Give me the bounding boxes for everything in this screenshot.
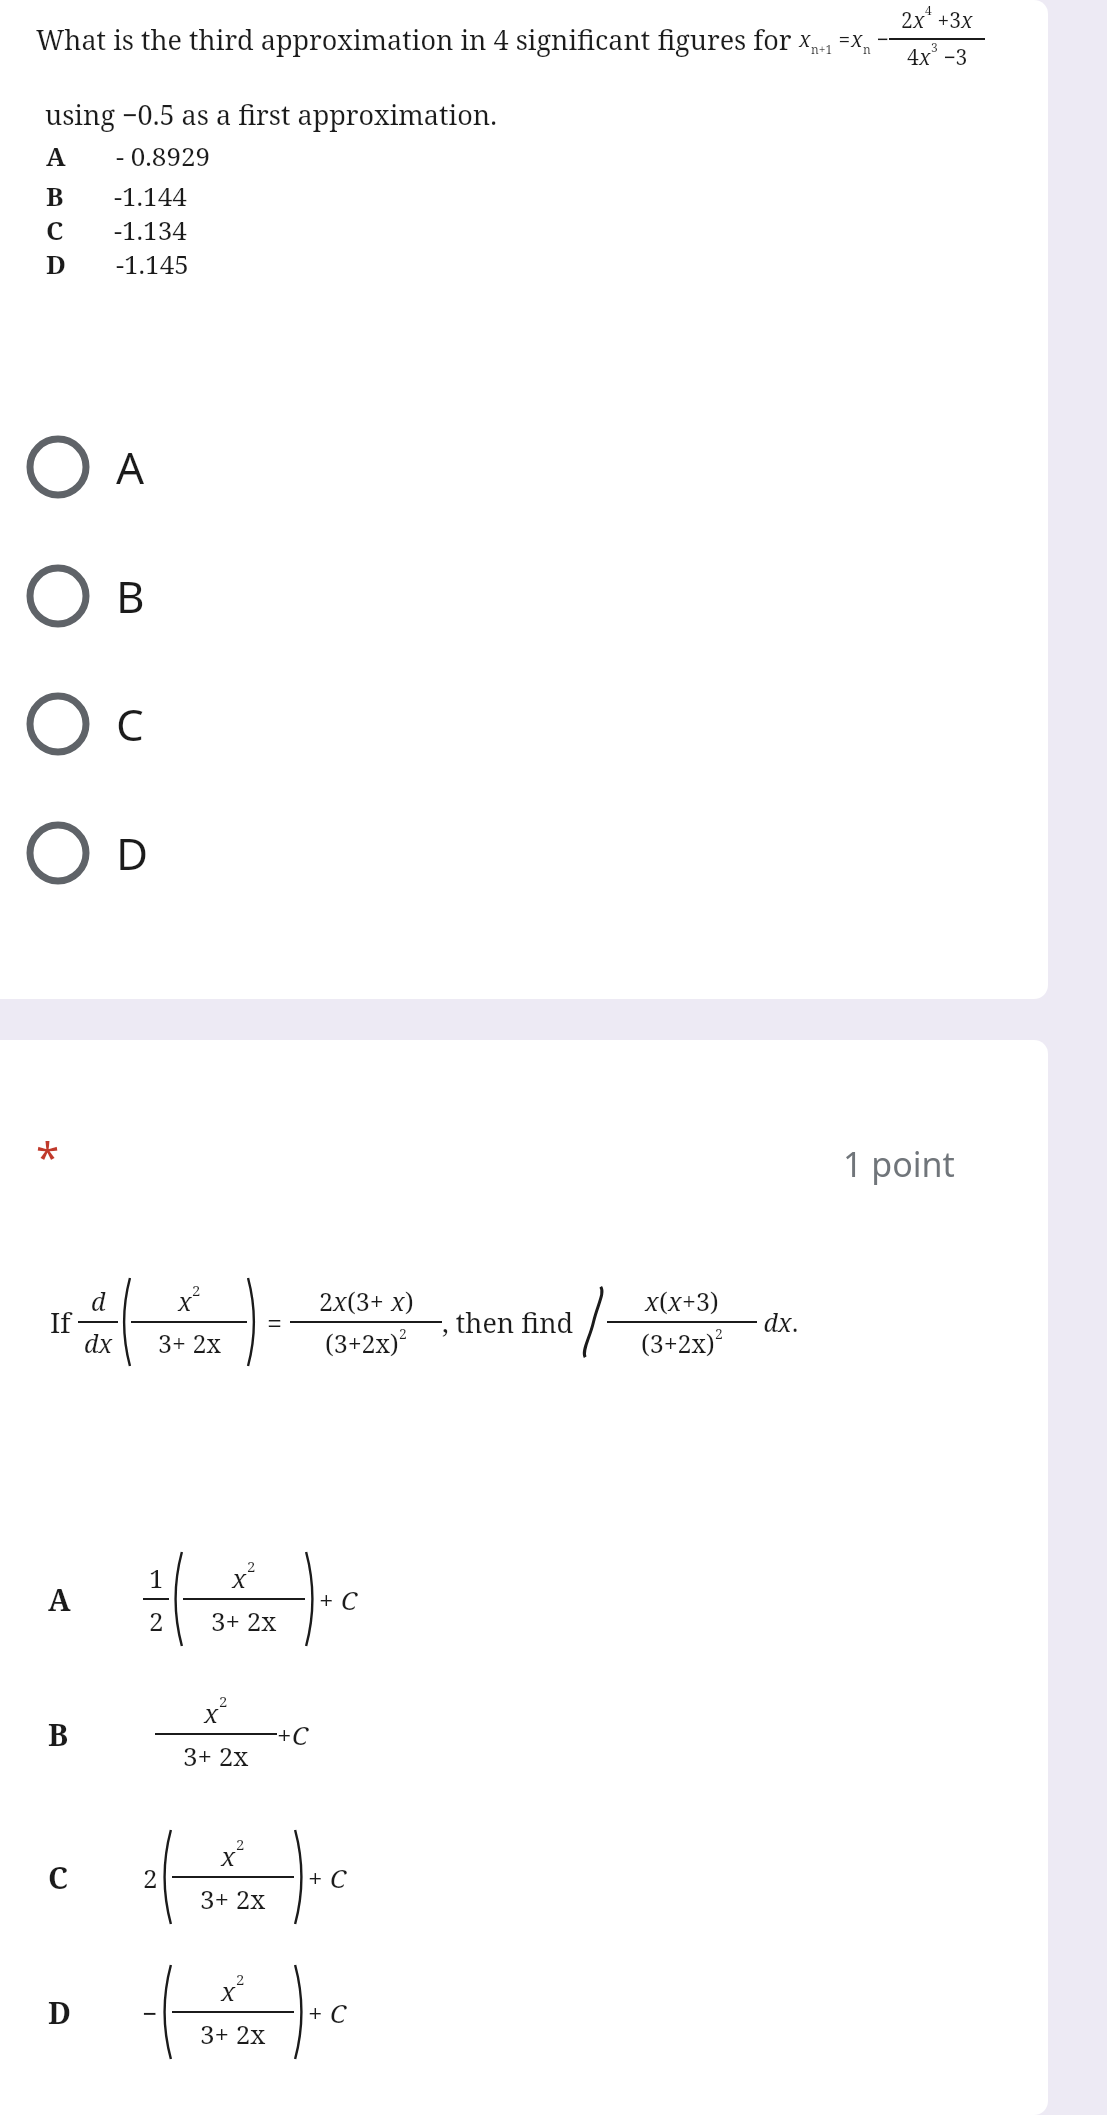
staticText: dx: [84, 1326, 113, 1360]
staticText: B: [48, 1714, 69, 1755]
staticText: x: [232, 1560, 247, 1595]
staticText: B: [116, 566, 145, 626]
button[interactable]: A: [0, 417, 1048, 517]
staticText: 1: [149, 1560, 164, 1595]
button[interactable]: B: [0, 546, 1048, 646]
staticText: n+1: [811, 41, 833, 57]
staticText: 2: [319, 1284, 333, 1318]
staticText: x: [799, 25, 811, 54]
staticText: =: [260, 1304, 290, 1341]
staticText: (3+2x): [325, 1326, 399, 1360]
staticText: 2: [901, 6, 913, 35]
staticText: 2: [219, 1691, 228, 1711]
staticText: 2: [399, 1324, 407, 1343]
staticText: x: [913, 6, 925, 35]
staticText: x: [221, 1838, 236, 1873]
staticText: , then find: [442, 1304, 581, 1341]
staticText: x: [333, 1284, 347, 1318]
staticText: x: [204, 1695, 219, 1730]
staticText: 3+ 2x: [158, 1326, 221, 1360]
staticText: +: [277, 1717, 292, 1752]
staticText: D: [46, 246, 66, 281]
staticText: x: [851, 25, 863, 54]
staticText: A: [46, 138, 66, 173]
staticText: 1 point: [843, 1141, 955, 1187]
staticText: A: [116, 437, 145, 497]
staticText: .: [792, 1305, 799, 1339]
staticText: C: [330, 1860, 347, 1895]
staticText: +3: [932, 6, 961, 35]
staticText: 2: [247, 1556, 256, 1576]
staticText: using −0.5 as a first approximation.: [45, 96, 497, 133]
staticText: x: [668, 1284, 682, 1318]
staticText: 2: [715, 1324, 723, 1343]
staticText: x: [961, 6, 973, 35]
staticText: 2: [236, 1969, 245, 1989]
staticText: 2: [143, 1860, 158, 1895]
staticText: C: [341, 1582, 358, 1617]
staticText: What is the third approximation in 4 sig…: [36, 21, 799, 58]
staticText: (3+2x): [641, 1326, 715, 1360]
staticText: 3+ 2x: [211, 1603, 277, 1638]
staticText: −: [871, 25, 889, 54]
staticText: C: [48, 1857, 69, 1898]
staticText: x: [178, 1284, 192, 1318]
staticText: x: [221, 1973, 236, 2008]
staticText: -1.134: [114, 212, 187, 247]
staticText: x: [919, 43, 931, 72]
staticText: -1.144: [114, 178, 187, 213]
staticText: B: [46, 178, 64, 213]
staticText: C: [116, 694, 144, 754]
staticText: C: [46, 212, 64, 247]
staticText: 4: [925, 2, 932, 18]
staticText: 3+ 2x: [183, 1738, 249, 1773]
staticText: C: [330, 1995, 347, 2030]
staticText: 3: [931, 39, 938, 55]
staticText: +: [308, 1860, 330, 1895]
staticText: 3+ 2x: [200, 2016, 266, 2051]
staticText: 2: [149, 1603, 164, 1638]
staticText: C: [292, 1717, 309, 1752]
staticText: dx: [757, 1305, 792, 1339]
staticText: D: [48, 1992, 72, 2033]
staticText: =: [833, 25, 851, 54]
staticText: *: [36, 1128, 60, 1185]
staticText: (: [659, 1284, 668, 1318]
staticText: +: [319, 1582, 341, 1617]
staticText: n: [863, 41, 871, 57]
staticText: −3: [938, 43, 968, 72]
button[interactable]: D: [0, 803, 1048, 903]
staticText: d: [91, 1284, 106, 1318]
staticText: (3+: [347, 1284, 391, 1318]
staticText: 2: [192, 1280, 201, 1300]
staticText: If: [50, 1303, 78, 1341]
staticText: 3+ 2x: [200, 1881, 266, 1916]
staticText: 2: [236, 1834, 245, 1854]
button[interactable]: C: [0, 674, 1048, 774]
staticText: A: [48, 1579, 71, 1620]
staticText: x: [645, 1284, 659, 1318]
staticText: 4: [907, 43, 919, 72]
staticText: ): [405, 1284, 414, 1318]
staticText: x: [391, 1284, 405, 1318]
staticText: −: [142, 1995, 158, 2030]
staticText: - 0.8929: [116, 138, 210, 173]
staticText: -1.145: [116, 246, 189, 281]
staticText: D: [116, 823, 149, 883]
staticText: +3): [682, 1284, 719, 1318]
staticText: +: [308, 1995, 330, 2030]
